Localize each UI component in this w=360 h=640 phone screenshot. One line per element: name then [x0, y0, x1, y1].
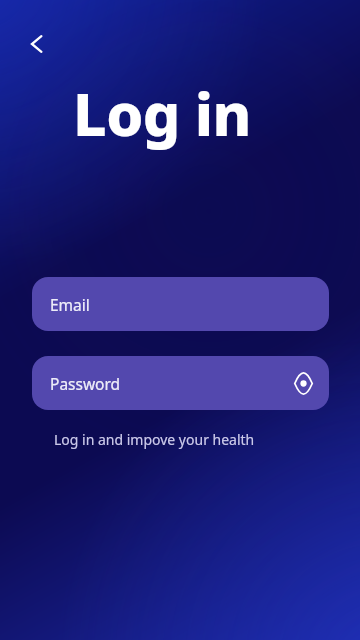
staticText: Password [50, 373, 121, 394]
button[interactable]: Email [32, 277, 329, 331]
staticText: Log in and impove your health [54, 430, 255, 449]
staticText: Log in [73, 73, 251, 153]
button[interactable]: Back [19, 27, 53, 61]
button[interactable]: Show password [287, 367, 319, 399]
button[interactable]: Password [32, 356, 329, 410]
staticText: Email [50, 294, 90, 315]
